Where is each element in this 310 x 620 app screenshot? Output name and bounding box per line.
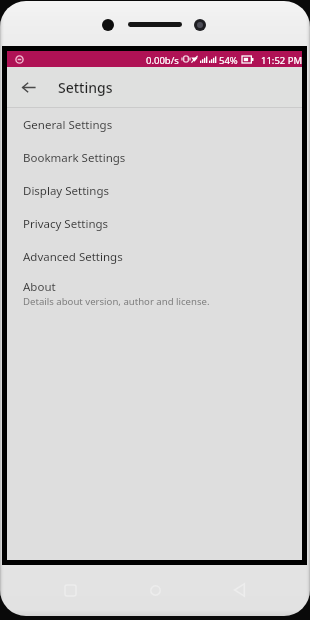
button[interactable]: Bookmark Settings [7,141,302,174]
staticText: About [23,279,56,295]
staticText: 11:52 PM [261,54,303,67]
button[interactable]: Privacy Settings [7,207,302,240]
staticText: 54% [219,54,238,67]
staticText: Privacy Settings [23,216,109,232]
staticText: 0.00b/s [146,54,179,67]
staticText: Settings [58,78,113,97]
staticText: Details about version, author and licens… [23,295,210,308]
button[interactable]: Navigate up [16,75,41,100]
staticText: Bookmark Settings [23,150,126,166]
button[interactable]: About [7,273,302,308]
button[interactable]: General Settings [7,108,302,141]
staticText: Display Settings [23,183,109,199]
staticText: General Settings [23,117,113,133]
button[interactable]: Display Settings [7,174,302,207]
staticText: Advanced Settings [23,249,123,265]
button[interactable]: Advanced Settings [7,240,302,273]
